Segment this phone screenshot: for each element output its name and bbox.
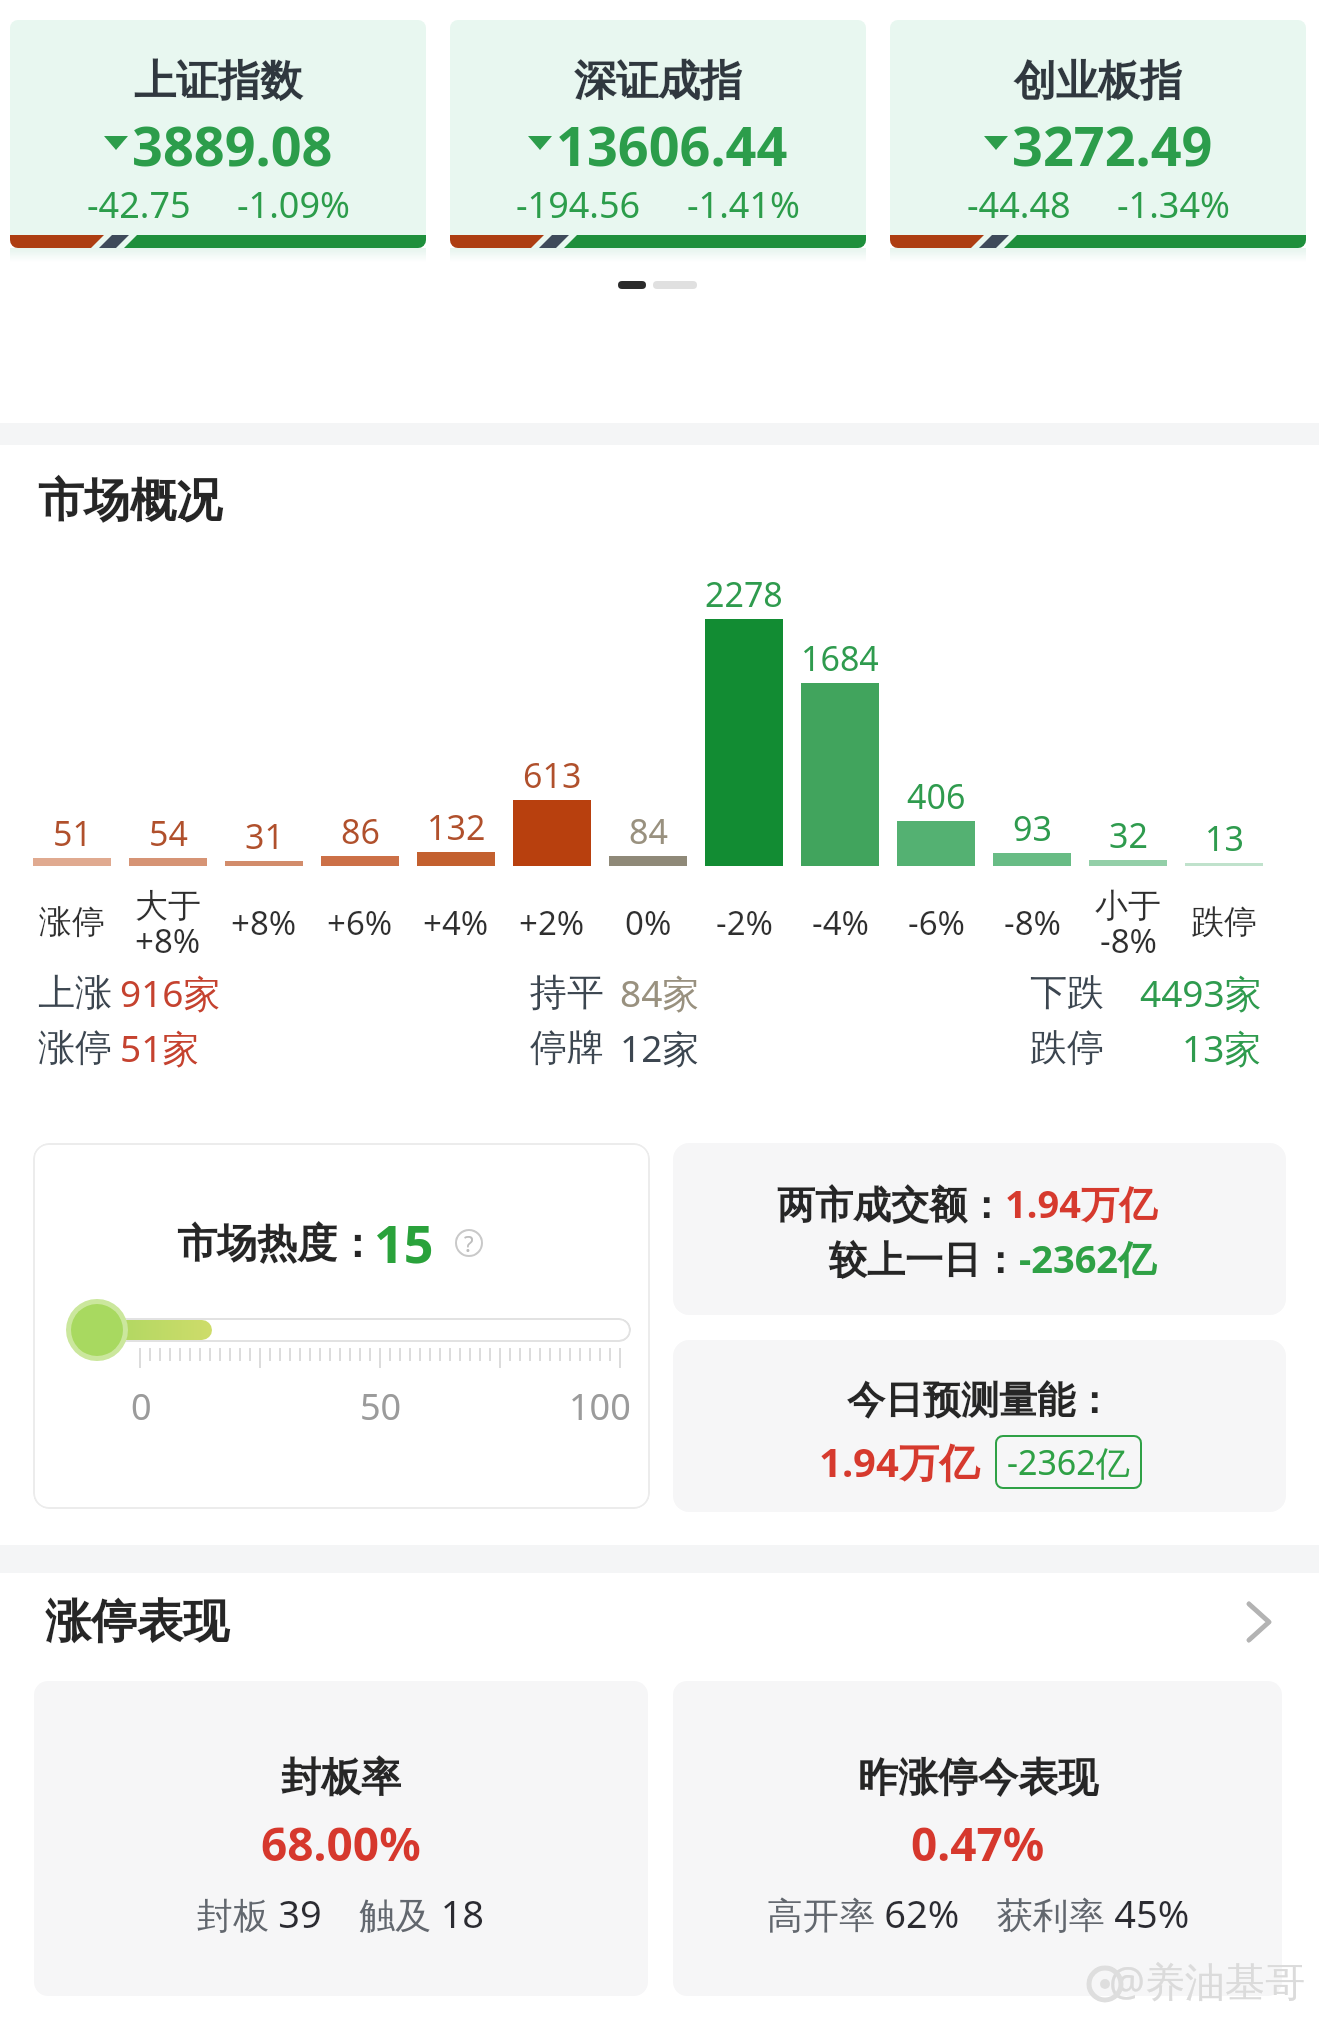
staticText: 32 xyxy=(1109,812,1148,856)
staticText: 3272.49 xyxy=(1012,108,1213,178)
staticText: 13 xyxy=(1205,815,1244,859)
staticText: 1.94万亿 xyxy=(819,1434,979,1489)
staticText: 上证指数 xyxy=(134,55,302,108)
button[interactable] xyxy=(34,1681,648,1996)
staticText: ? xyxy=(464,1228,474,1258)
staticText: +6% xyxy=(327,900,393,944)
staticText: 916家 xyxy=(120,967,221,1018)
staticText: -8% xyxy=(1004,900,1061,944)
staticText: 132 xyxy=(427,804,486,848)
staticText: 涨停 xyxy=(39,901,105,943)
staticText: 51家 xyxy=(120,1022,200,1073)
staticText: 13606.44 xyxy=(556,108,788,178)
staticText: -194.56 xyxy=(516,180,641,224)
staticText: -8% xyxy=(1100,918,1157,958)
staticText: 持平 xyxy=(530,969,604,1016)
staticText: 涨停 xyxy=(38,1024,112,1071)
staticText: 15 xyxy=(374,1207,434,1278)
staticText: 86 xyxy=(341,808,380,852)
staticText: 创业板指 xyxy=(1014,55,1182,108)
staticText: 昨涨停今表现 xyxy=(858,1752,1098,1802)
staticText: 0 xyxy=(131,1382,152,1431)
staticText: -42.75 xyxy=(87,180,191,224)
staticText: +4% xyxy=(423,900,489,944)
staticText: 1684 xyxy=(801,635,879,679)
staticText: -44.48 xyxy=(967,180,1071,224)
staticText: 上涨 xyxy=(38,969,112,1016)
staticText: 两市成交额：1.94万亿 xyxy=(777,1177,1157,1229)
staticText: 大于 xyxy=(135,885,201,925)
staticText: +8% xyxy=(231,900,297,944)
staticText: 13家 xyxy=(1182,1022,1262,1073)
staticText: +8% xyxy=(135,918,201,958)
button[interactable] xyxy=(33,1143,650,1509)
staticText: -6% xyxy=(908,900,965,944)
staticText: 51 xyxy=(53,810,92,854)
staticText: 停牌 xyxy=(530,1024,604,1071)
staticText: 高开率 62% 获利率 45% xyxy=(767,1887,1190,1939)
staticText: 12家 xyxy=(620,1022,700,1073)
staticText: -4% xyxy=(812,900,869,944)
staticText: 小于 xyxy=(1095,885,1161,925)
button[interactable] xyxy=(673,1340,1286,1512)
staticText: 2278 xyxy=(705,571,783,615)
staticText: 今日预测量能： xyxy=(847,1376,1113,1424)
staticText: 涨停表现 xyxy=(45,1593,229,1651)
staticText: +2% xyxy=(519,900,585,944)
staticText: 跌停 xyxy=(1030,1024,1104,1071)
button[interactable] xyxy=(673,1681,1282,1996)
staticText: 封板 39 触及 18 xyxy=(197,1887,485,1939)
button[interactable]: 创业板指 xyxy=(890,20,1306,248)
staticText: 市场热度： xyxy=(177,1218,377,1268)
button[interactable]: 上证指数 xyxy=(10,20,426,248)
staticText: 406 xyxy=(907,773,966,817)
staticText: 较上一日：-2362亿 xyxy=(829,1232,1157,1284)
staticText: 84家 xyxy=(620,967,700,1018)
staticText: @养油基哥 xyxy=(1109,1953,1305,2008)
staticText: 市场概况 xyxy=(38,472,222,530)
button[interactable]: 深证成指 xyxy=(450,20,866,248)
staticText: -2% xyxy=(716,900,773,944)
staticText: 封板率 xyxy=(281,1752,401,1802)
staticText: -2362亿 xyxy=(1007,1439,1130,1485)
staticText: 613 xyxy=(523,752,582,796)
staticText: 84 xyxy=(629,808,668,852)
staticText: 深证成指 xyxy=(574,55,742,108)
staticText: 50 xyxy=(360,1382,402,1431)
staticText: -1.09% xyxy=(237,180,350,224)
staticText: 54 xyxy=(149,810,188,854)
staticText: 100 xyxy=(569,1382,631,1431)
staticText: 下跌 xyxy=(1030,969,1104,1016)
staticText: -1.34% xyxy=(1117,180,1230,224)
button[interactable] xyxy=(673,1143,1286,1315)
staticText: 31 xyxy=(245,813,284,857)
staticText: 0.47% xyxy=(911,1812,1045,1875)
staticText: 68.00% xyxy=(261,1812,421,1875)
staticText: -1.41% xyxy=(687,180,800,224)
staticText: 4493家 xyxy=(1140,967,1262,1018)
staticText: 3889.08 xyxy=(132,108,333,178)
staticText: 跌停 xyxy=(1191,901,1257,943)
button[interactable] xyxy=(0,1588,1319,1652)
staticText: 0% xyxy=(625,900,672,944)
staticText: 93 xyxy=(1013,805,1052,849)
